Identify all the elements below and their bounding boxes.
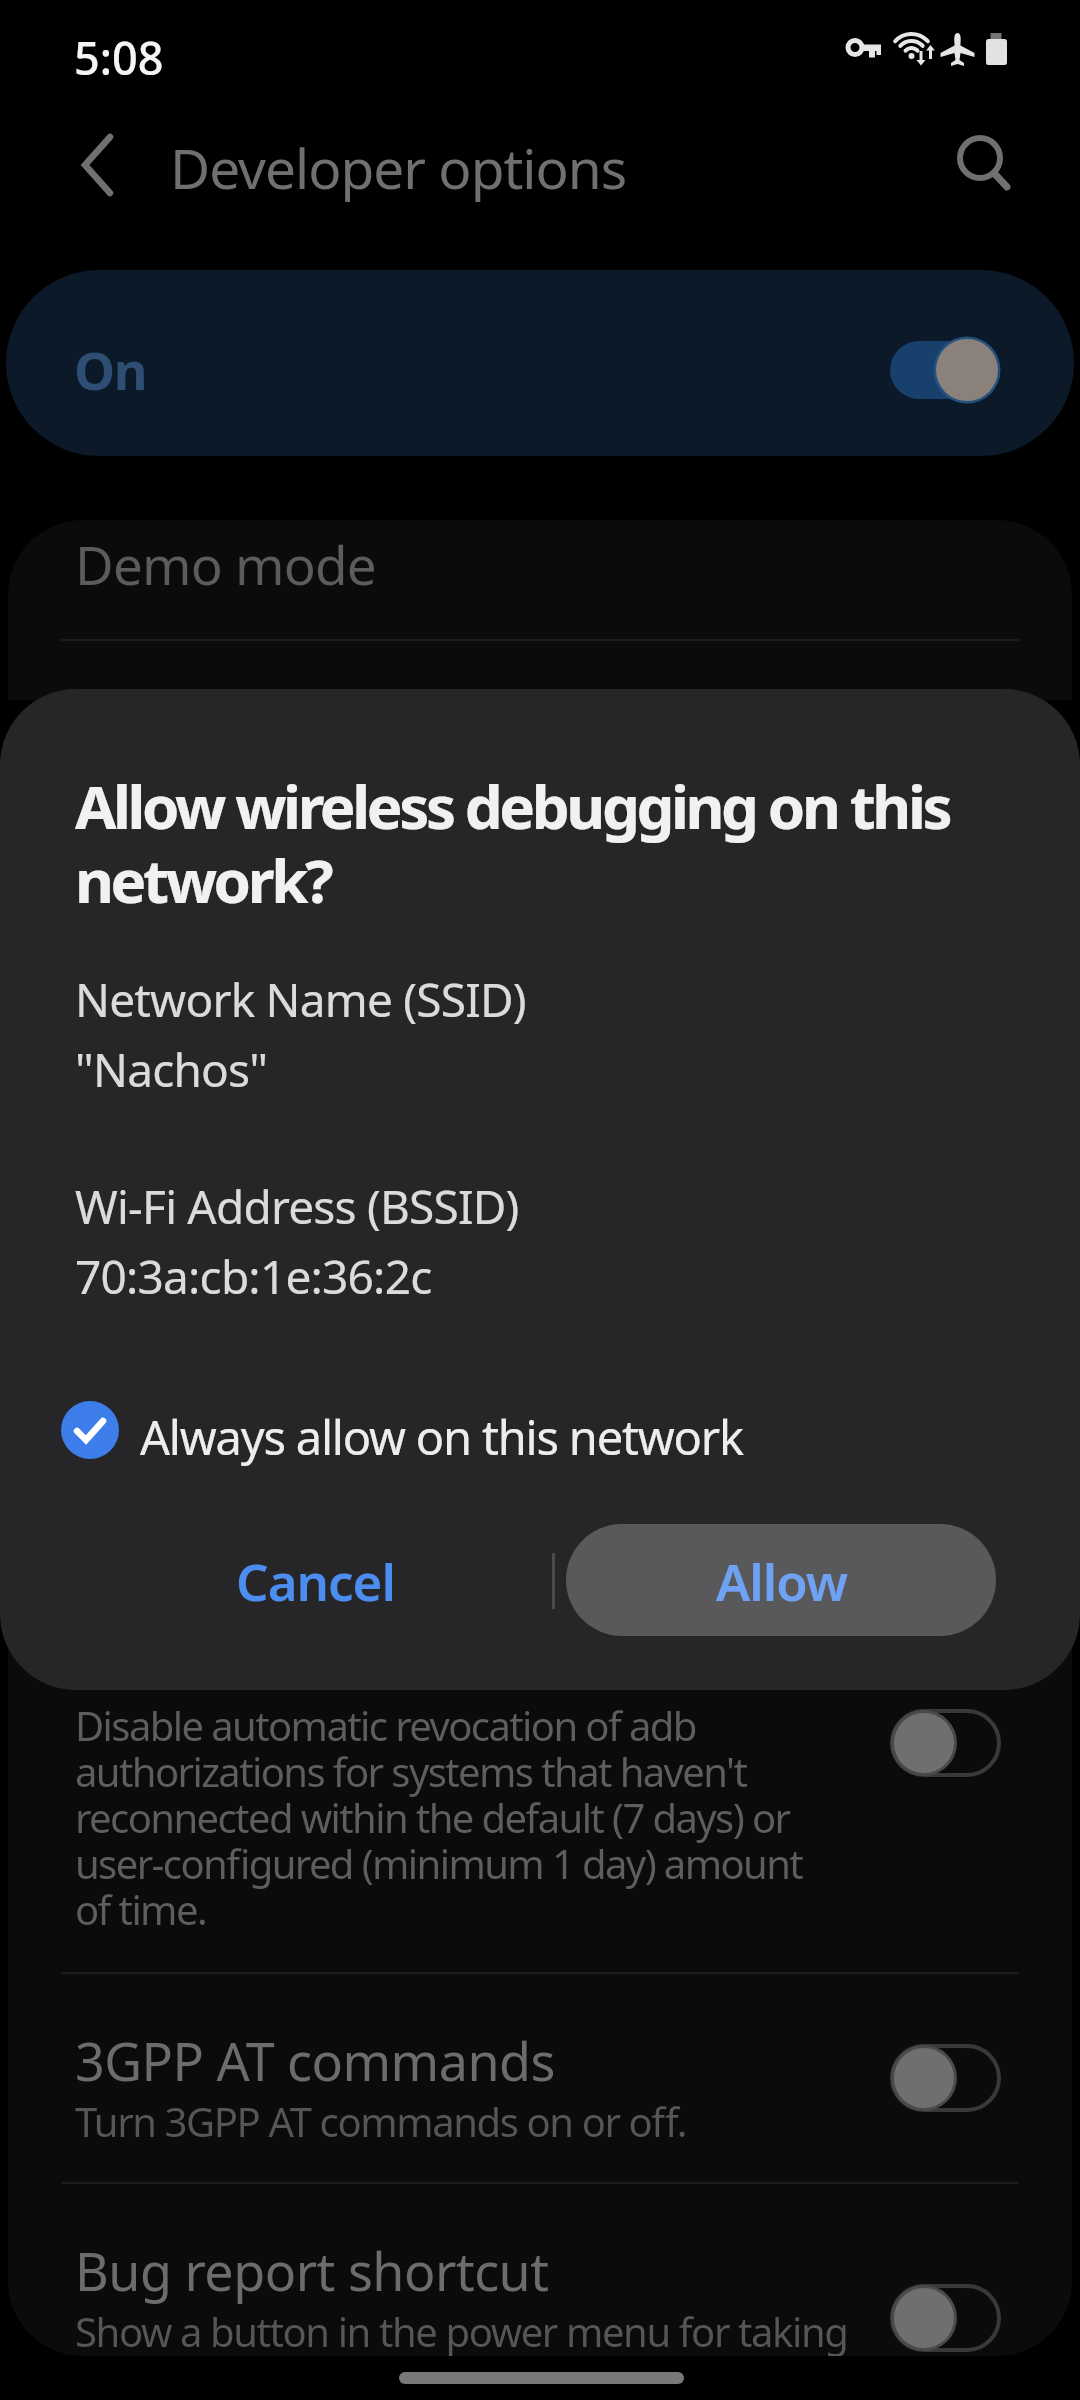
staticText: Turn 3GPP AT commands on or off. [75, 2094, 686, 2148]
staticText: Always allow on this network [140, 1405, 743, 1469]
staticText: 5:08 [74, 27, 164, 88]
staticText: Cancel [236, 1546, 395, 1615]
staticText: Bug report shortcut [75, 2235, 549, 2306]
staticText: 3GPP AT commands [75, 2025, 555, 2096]
staticText: On [74, 334, 146, 405]
staticText: Allow wireless debugging on this network… [75, 765, 950, 921]
staticText: Disable automatic revocation of adb auth… [75, 1698, 803, 1937]
button[interactable] [884, 2285, 1000, 2351]
button[interactable]: On [6, 270, 1074, 456]
staticText: Allow [716, 1546, 847, 1615]
staticText: Developer options [170, 130, 627, 205]
staticText: Demo mode [75, 528, 376, 600]
button[interactable] [8, 520, 1072, 700]
button[interactable] [60, 120, 150, 210]
button[interactable] [940, 120, 1030, 210]
button[interactable]: Cancel [200, 1535, 430, 1625]
button[interactable] [884, 2045, 1000, 2111]
staticText: Wi-Fi Address (BSSID) 70:3a:cb:1e:36:2c [75, 1175, 519, 1307]
staticText: Show a button in the power menu for taki… [75, 2304, 848, 2356]
button[interactable] [50, 1389, 850, 1473]
staticText: Network Name (SSID) "Nachos" [75, 968, 526, 1100]
button[interactable] [884, 1710, 1000, 1776]
button[interactable]: Allow [566, 1524, 996, 1636]
